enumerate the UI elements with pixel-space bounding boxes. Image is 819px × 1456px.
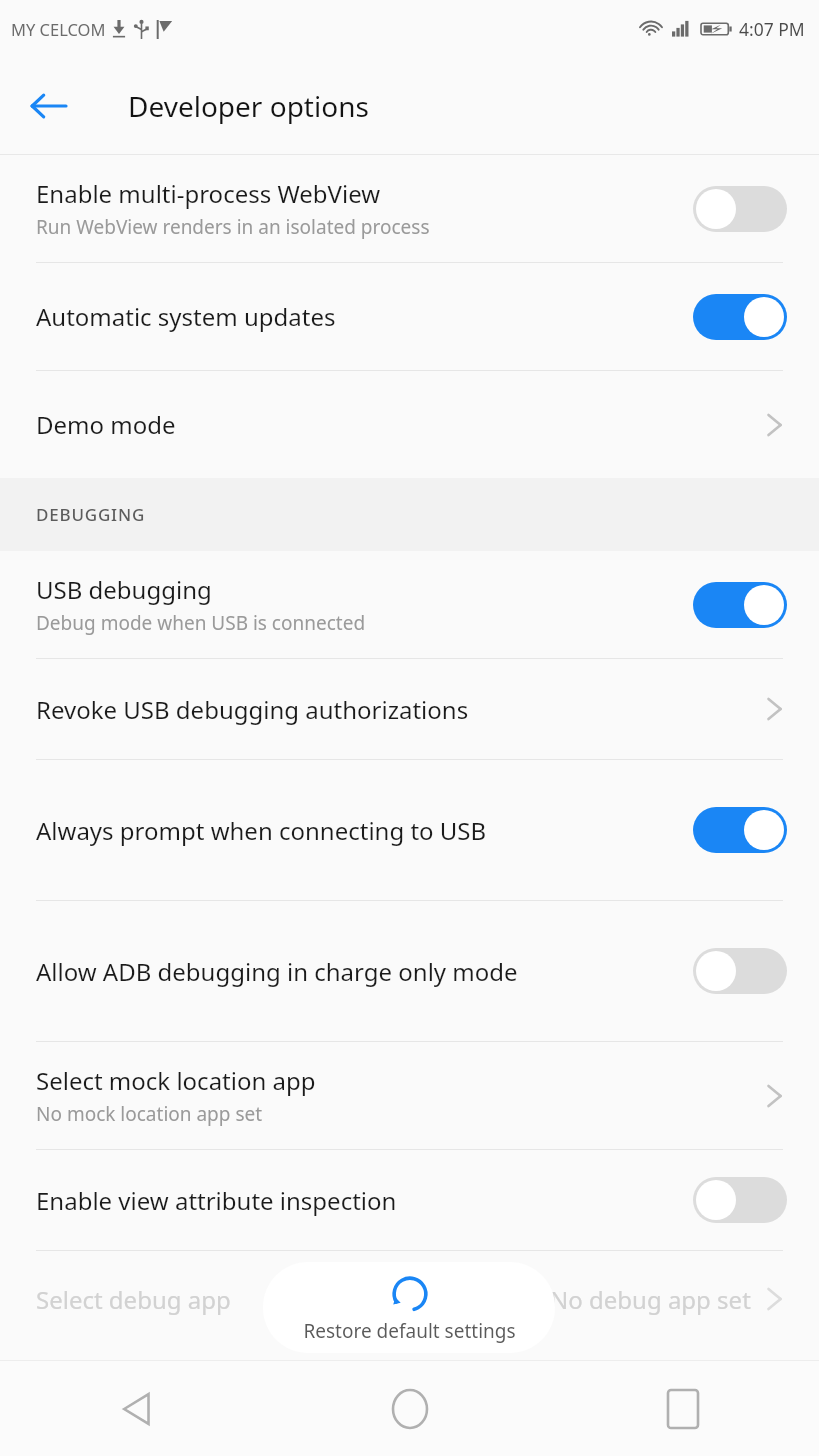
- button[interactable]: Back: [20, 78, 76, 134]
- button[interactable]: Revoke USB debugging authorizations: [0, 659, 819, 759]
- staticText: Revoke USB debugging authorizations: [36, 693, 469, 726]
- button[interactable]: Select debug app: [0, 1251, 819, 1347]
- button[interactable]: Back: [0, 1361, 273, 1456]
- button[interactable]: Demo mode: [0, 371, 819, 478]
- staticText: Run WebView renders in an isolated proce…: [36, 214, 430, 240]
- staticText: Always prompt when connecting to USB: [36, 814, 487, 847]
- button[interactable]: Restore default settings: [263, 1262, 555, 1353]
- staticText: No mock location app set: [36, 1101, 263, 1127]
- button[interactable]: Recents: [546, 1361, 819, 1456]
- staticText: USB debugging: [36, 573, 212, 606]
- staticText: No debug app set: [550, 1283, 751, 1316]
- button[interactable]: Allow ADB debugging in charge only mode: [0, 901, 819, 1041]
- staticText: Developer options: [128, 87, 369, 125]
- button[interactable]: Enable view attribute inspection: [0, 1150, 819, 1250]
- staticText: Automatic system updates: [36, 300, 336, 333]
- staticText: Select debug app: [36, 1283, 550, 1316]
- staticText: MY CELCOM: [11, 18, 106, 40]
- staticText: Select mock location app: [36, 1064, 316, 1097]
- button[interactable]: USB debugging: [0, 551, 819, 658]
- staticText: Debug mode when USB is connected: [36, 610, 366, 636]
- staticText: Allow ADB debugging in charge only mode: [36, 955, 518, 988]
- button[interactable]: Select mock location app: [0, 1042, 819, 1149]
- staticText: Demo mode: [36, 408, 176, 441]
- button[interactable]: Always prompt when connecting to USB: [0, 760, 819, 900]
- staticText: Enable multi-process WebView: [36, 177, 381, 210]
- button[interactable]: Automatic system updates: [0, 263, 819, 370]
- staticText: 4:07 PM: [739, 17, 805, 41]
- button[interactable]: Enable multi-process WebView: [0, 155, 819, 262]
- staticText: DEBUGGING: [36, 503, 146, 526]
- button[interactable]: Home: [273, 1361, 546, 1456]
- staticText: Restore default settings: [303, 1318, 516, 1344]
- staticText: Enable view attribute inspection: [36, 1184, 397, 1217]
